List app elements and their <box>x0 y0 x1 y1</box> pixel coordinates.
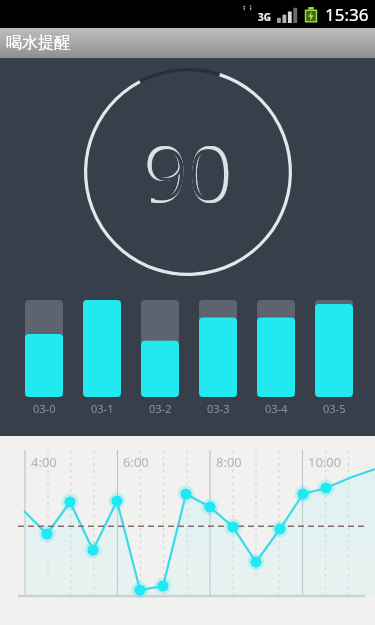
staticText: 90 <box>148 125 228 220</box>
staticText: 03-1 <box>91 401 114 416</box>
staticText: 03-0 <box>33 401 56 416</box>
button[interactable]: Hourly water chart <box>0 436 375 625</box>
staticText: 6:00 <box>123 453 149 471</box>
staticText: 8:00 <box>216 453 242 471</box>
staticText: 03-2 <box>149 401 172 416</box>
button[interactable]: 喝水提醒 <box>0 28 375 58</box>
staticText: 10:00 <box>308 453 342 471</box>
staticText: 喝水提醒 <box>6 33 70 53</box>
button[interactable]: Water progress 90 <box>82 66 294 278</box>
staticText: 03-3 <box>207 401 230 416</box>
staticText: 03-5 <box>323 401 346 416</box>
staticText: 90 <box>143 119 233 225</box>
staticText: 03-4 <box>265 401 288 416</box>
staticText: 15:36 <box>325 3 369 26</box>
staticText: 4:00 <box>31 453 57 471</box>
staticText: 3G <box>258 10 271 24</box>
